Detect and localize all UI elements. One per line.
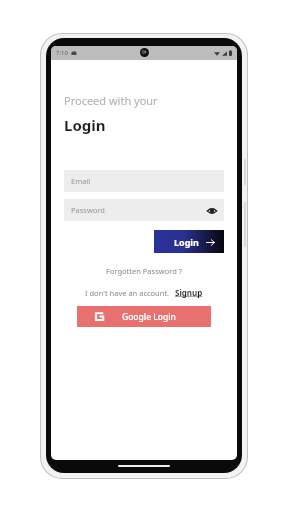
staticText: Proceed with your — [64, 93, 158, 108]
button[interactable]: Login — [154, 230, 224, 253]
button[interactable]: Google Login — [77, 306, 211, 327]
staticText: Login — [64, 115, 106, 135]
staticText: Password — [71, 205, 206, 215]
staticText: Email — [71, 176, 217, 186]
staticText: 7:10 — [56, 49, 68, 57]
button[interactable]: Signup — [175, 287, 203, 298]
button[interactable]: Password — [64, 199, 224, 221]
staticText: Signup — [175, 287, 203, 298]
button[interactable]: Show password — [206, 205, 217, 216]
staticText: Login — [174, 236, 199, 248]
button[interactable]: Forgotten Password ? — [102, 264, 186, 278]
staticText: Forgotten Password ? — [106, 266, 182, 276]
button[interactable]: Email — [64, 170, 224, 192]
staticText: I don't have an account. — [85, 288, 170, 298]
staticText: Google Login — [122, 311, 176, 323]
